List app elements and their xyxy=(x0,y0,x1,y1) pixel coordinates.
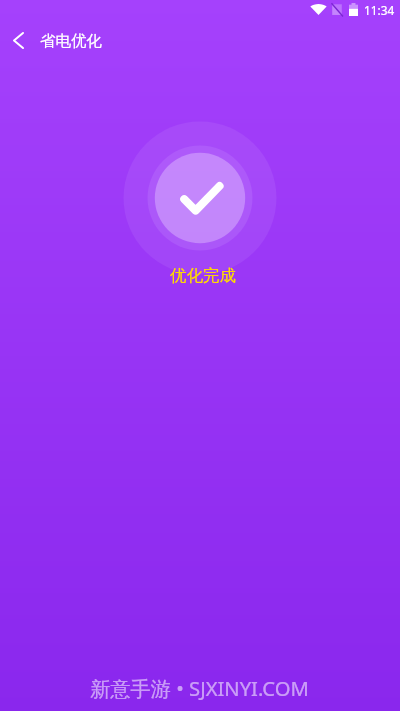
button[interactable]: Back xyxy=(0,20,36,60)
staticText: 省电优化 xyxy=(40,31,102,51)
staticText: 新意手游 • SJXINYI.COM xyxy=(90,674,309,702)
staticText: 11:34 xyxy=(364,2,395,18)
staticText: 优化完成 xyxy=(170,265,236,286)
